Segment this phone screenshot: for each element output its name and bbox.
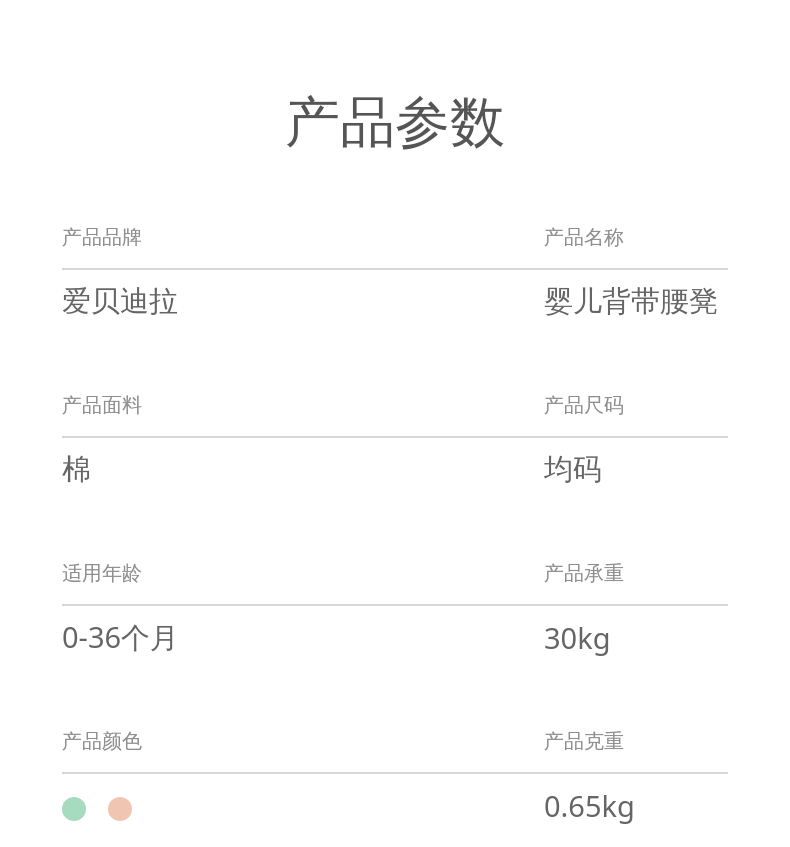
staticText: 爱贝迪拉	[62, 283, 178, 320]
staticText: 产品面料	[62, 393, 142, 418]
button[interactable]: Mint green colour option	[62, 797, 86, 821]
staticText: 产品克重	[544, 729, 624, 754]
staticText: 产品颜色	[62, 729, 142, 754]
staticText: 产品品牌	[62, 225, 142, 250]
staticText: 产品尺码	[544, 393, 624, 418]
staticText: 适用年龄	[62, 561, 142, 586]
staticText: 产品参数	[0, 88, 790, 157]
staticText: 婴儿背带腰凳	[544, 283, 718, 320]
staticText: 30kg	[544, 618, 611, 657]
staticText: 棉	[62, 451, 91, 488]
staticText: 均码	[544, 451, 602, 488]
staticText: 0.65kg	[544, 786, 635, 825]
staticText: 0-36个月	[62, 617, 180, 657]
staticText: 产品承重	[544, 561, 624, 586]
staticText: 产品名称	[544, 225, 624, 250]
button[interactable]: Peach pink colour option	[108, 797, 132, 821]
